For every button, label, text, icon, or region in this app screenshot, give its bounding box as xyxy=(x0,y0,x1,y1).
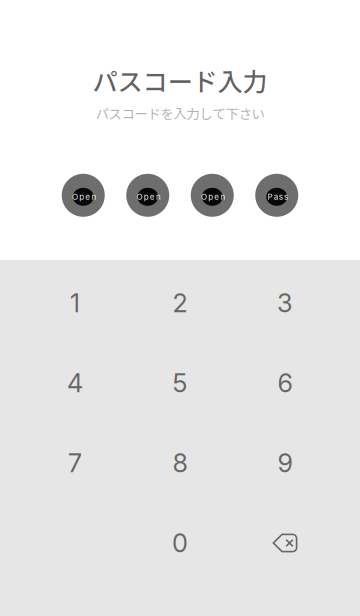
button[interactable]: 9 xyxy=(232,423,337,503)
staticText: 4 xyxy=(67,368,83,398)
button[interactable]: 1 xyxy=(22,263,127,343)
button[interactable]: 0 xyxy=(127,503,232,583)
staticText: 1 xyxy=(70,288,80,318)
staticText: 5 xyxy=(172,368,187,398)
button[interactable]: Pass xyxy=(255,174,298,217)
button[interactable]: 2 xyxy=(127,263,232,343)
staticText: Open xyxy=(201,192,225,202)
staticText: 7 xyxy=(68,448,82,478)
button[interactable]: 8 xyxy=(127,423,232,503)
staticText: Open xyxy=(72,192,96,202)
staticText: 8 xyxy=(172,448,187,478)
button[interactable]: 3 xyxy=(232,263,337,343)
staticText: Pass xyxy=(268,192,288,202)
button[interactable]: Open xyxy=(62,174,105,217)
staticText: 3 xyxy=(277,288,293,318)
staticText: 0 xyxy=(172,528,188,558)
button[interactable]: Open xyxy=(126,174,169,217)
button[interactable]: 5 xyxy=(127,343,232,423)
staticText: Open xyxy=(137,192,161,202)
button[interactable]: 7 xyxy=(22,423,127,503)
button[interactable]: 4 xyxy=(22,343,127,423)
button[interactable]: Delete xyxy=(232,503,337,583)
staticText: 9 xyxy=(277,448,292,478)
button[interactable]: 6 xyxy=(232,343,337,423)
staticText: パスコード入力 xyxy=(92,62,267,98)
staticText: パスコードを入力して下さい xyxy=(95,103,264,123)
staticText: 6 xyxy=(277,368,292,398)
staticText: 2 xyxy=(172,288,187,318)
button[interactable]: Open xyxy=(191,174,234,217)
